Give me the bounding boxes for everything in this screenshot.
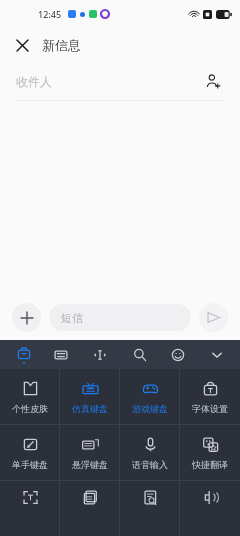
staticText: 收件人: [16, 74, 52, 89]
button[interactable]: 悬浮键盘: [60, 425, 120, 480]
staticText: 仿真键盘: [72, 403, 108, 414]
button[interactable]: 收件人: [0, 62, 240, 100]
button[interactable]: Collapse: [204, 342, 230, 368]
button[interactable]: Text select: [0, 481, 60, 536]
button[interactable]: Clipboard: [60, 481, 120, 536]
staticText: 语音输入: [132, 459, 168, 470]
button[interactable]: 仿真键盘: [60, 369, 120, 424]
staticText: 短信: [61, 311, 83, 325]
button[interactable]: 单手键盘: [0, 425, 60, 480]
button[interactable]: Add attachment: [12, 303, 41, 332]
button[interactable]: 字体设置: [180, 369, 240, 424]
staticText: 单手键盘: [12, 459, 48, 470]
button[interactable]: Close: [8, 31, 36, 59]
button[interactable]: 语音输入: [120, 425, 180, 480]
staticText: 字体设置: [192, 403, 228, 414]
button[interactable]: 快捷翻译: [180, 425, 240, 480]
button[interactable]: Add recipient: [202, 70, 224, 92]
button[interactable]: 游戏键盘: [120, 369, 180, 424]
button[interactable]: Search: [127, 342, 153, 368]
staticText: 新信息: [42, 37, 81, 53]
button[interactable]: 个性皮肤: [0, 369, 60, 424]
button[interactable]: Keyboard: [48, 342, 74, 368]
button[interactable]: Move cursor: [87, 342, 113, 368]
staticText: 快捷翻译: [192, 459, 228, 470]
button[interactable]: Send: [199, 303, 228, 332]
button[interactable]: Emoji: [165, 342, 191, 368]
button[interactable]: Sound: [180, 481, 240, 536]
staticText: 游戏键盘: [132, 403, 168, 414]
button[interactable]: Document search: [120, 481, 180, 536]
staticText: 12:45: [38, 8, 62, 20]
button[interactable]: Toolbox: [11, 342, 37, 368]
button[interactable]: 短信: [49, 304, 191, 331]
staticText: 悬浮键盘: [72, 459, 108, 470]
staticText: 个性皮肤: [12, 403, 48, 414]
